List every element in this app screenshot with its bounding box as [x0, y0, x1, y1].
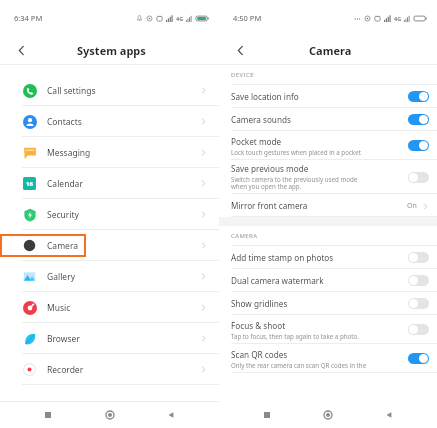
staticText: Recorder	[47, 364, 84, 376]
staticText: Messaging	[47, 147, 91, 159]
button[interactable]: Mirror front camera	[219, 194, 437, 217]
button[interactable]: Browser	[0, 323, 219, 354]
staticText: CAMERA	[231, 232, 258, 240]
staticText: Security	[47, 209, 79, 221]
button[interactable]	[408, 140, 429, 151]
staticText: Focus & shoot	[231, 320, 286, 331]
button[interactable]: Recent apps	[254, 402, 280, 428]
button[interactable]: Gallery	[0, 261, 219, 292]
button[interactable]	[408, 353, 429, 364]
button[interactable]: Back	[227, 37, 253, 63]
button[interactable]: Back	[158, 402, 184, 428]
staticText: 16	[26, 180, 33, 188]
button[interactable]: Home	[97, 402, 123, 428]
button[interactable]: Pocket mode	[219, 131, 437, 160]
staticText: Scan QR codes	[231, 349, 288, 360]
button[interactable]: Recorder	[0, 354, 219, 385]
staticText: Dual camera watermark	[231, 275, 324, 286]
staticText: Music	[47, 302, 71, 314]
button[interactable]	[408, 275, 429, 286]
staticText: Call settings	[47, 85, 96, 97]
button[interactable]: Music	[0, 292, 219, 323]
staticText: On	[407, 201, 417, 211]
staticText: Show gridlines	[231, 298, 288, 309]
staticText: Camera	[47, 240, 78, 252]
staticText: Gallery	[47, 271, 75, 283]
button[interactable]: Focus & shoot	[219, 315, 437, 344]
button[interactable]: Recent apps	[35, 402, 61, 428]
button[interactable]: Contacts	[0, 106, 219, 137]
button[interactable]	[408, 298, 429, 309]
button[interactable]: Save previous mode	[219, 160, 437, 194]
button[interactable]: Call settings	[0, 75, 219, 106]
staticText: Lock touch gestures when placed in a poc…	[231, 148, 361, 156]
button[interactable]: Dual camera watermark	[219, 269, 437, 292]
staticText: Save previous mode	[231, 163, 309, 174]
button[interactable]: Scan QR codes	[219, 344, 437, 373]
button[interactable]: Home	[315, 402, 341, 428]
staticText: Calendar	[47, 178, 83, 190]
staticText: Contacts	[47, 116, 82, 128]
button[interactable]	[408, 172, 429, 183]
button[interactable]	[408, 324, 429, 335]
staticText: 4G	[394, 15, 402, 22]
staticText: Mirror front camera	[231, 200, 308, 211]
staticText: DEVICE	[231, 71, 254, 79]
staticText: Pocket mode	[231, 136, 282, 147]
staticText: Camera	[309, 43, 352, 58]
button[interactable]: Show gridlines	[219, 292, 437, 315]
button[interactable]: Back	[376, 402, 402, 428]
staticText: 4:50 PM	[233, 13, 262, 23]
button[interactable]	[408, 91, 429, 102]
staticText: Switch camera to the previously used mod…	[231, 175, 358, 191]
button[interactable]: Messaging	[0, 137, 219, 168]
button[interactable]: Camera	[0, 230, 219, 261]
button[interactable]: Camera sounds	[219, 108, 437, 131]
button[interactable]: 16	[0, 168, 219, 199]
staticText: 6:34 PM	[14, 13, 43, 23]
staticText: Browser	[47, 333, 80, 345]
button[interactable]	[408, 252, 429, 263]
staticText: Only the rear camera can scan QR codes i…	[231, 361, 367, 369]
button[interactable]: Security	[0, 199, 219, 230]
staticText: Save location info	[231, 91, 299, 102]
staticText: Tap to focus, then tap again to take a p…	[231, 332, 359, 340]
staticText: 4G	[176, 15, 184, 22]
staticText: Camera sounds	[231, 114, 291, 125]
button[interactable]: Back	[8, 37, 34, 63]
button[interactable]	[408, 114, 429, 125]
staticText: Add time stamp on photos	[231, 252, 334, 263]
staticText: System apps	[77, 43, 146, 58]
button[interactable]: Save location info	[219, 85, 437, 108]
button[interactable]: Add time stamp on photos	[219, 246, 437, 269]
